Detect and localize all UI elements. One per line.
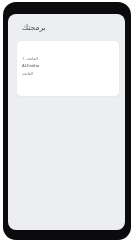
button[interactable]: 1. الفاتحة: [17, 41, 119, 96]
staticText: 1. الفاتحة: [22, 56, 38, 61]
staticText: برمجتك: [22, 23, 46, 32]
staticText: Al-Fatiha: [22, 63, 40, 69]
staticText: الفاتحة: [22, 71, 34, 76]
button[interactable]: برمجتك: [8, 14, 125, 41]
